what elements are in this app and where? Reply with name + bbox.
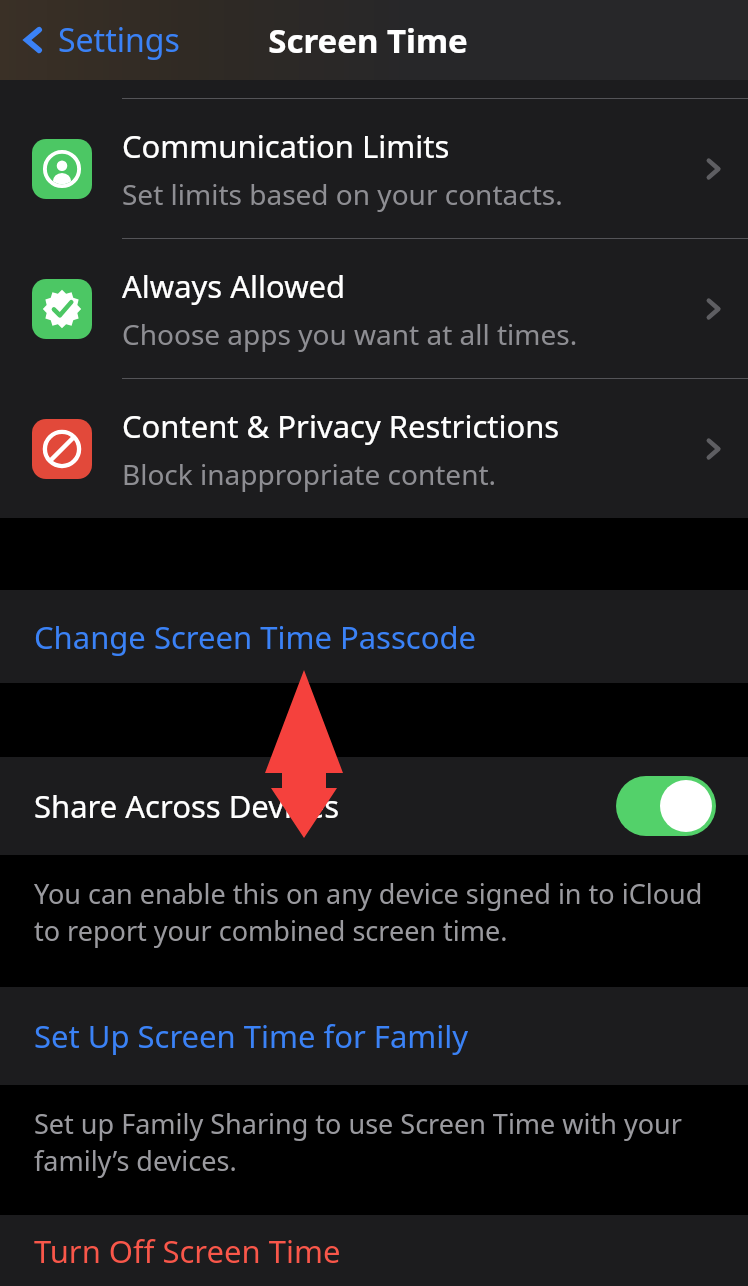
staticText: Always Allowed [122, 265, 346, 307]
staticText: Set limits based on your contacts. [122, 175, 563, 213]
button[interactable]: Communication Limits [0, 99, 748, 238]
staticText: Set Up Screen Time for Family [34, 1015, 469, 1057]
staticText: Settings [58, 18, 180, 62]
button[interactable]: Share Across Devices toggle, on [616, 776, 716, 836]
staticText: Share Across Devices [34, 785, 340, 827]
button[interactable]: Change Screen Time Passcode [0, 590, 748, 683]
staticText: You can enable this on any device signed… [34, 875, 708, 949]
button[interactable]: Turn Off Screen Time [0, 1215, 748, 1286]
staticText: Block inappropriate content. [122, 455, 497, 493]
button[interactable]: Set Up Screen Time for Family [0, 987, 748, 1085]
staticText: Content & Privacy Restrictions [122, 405, 560, 447]
staticText: Change Screen Time Passcode [34, 616, 476, 658]
staticText: Turn Off Screen Time [34, 1230, 341, 1272]
staticText: Set up Family Sharing to use Screen Time… [34, 1105, 708, 1179]
button[interactable]: Always Allowed [0, 239, 748, 378]
staticText: Choose apps you want at all times. [122, 315, 578, 353]
staticText: Screen Time [268, 18, 468, 63]
button[interactable]: Share Across Devices [0, 757, 748, 855]
button[interactable]: Content & Privacy Restrictions [0, 379, 748, 518]
staticText: Communication Limits [122, 125, 450, 167]
button[interactable]: Settings [16, 18, 180, 62]
